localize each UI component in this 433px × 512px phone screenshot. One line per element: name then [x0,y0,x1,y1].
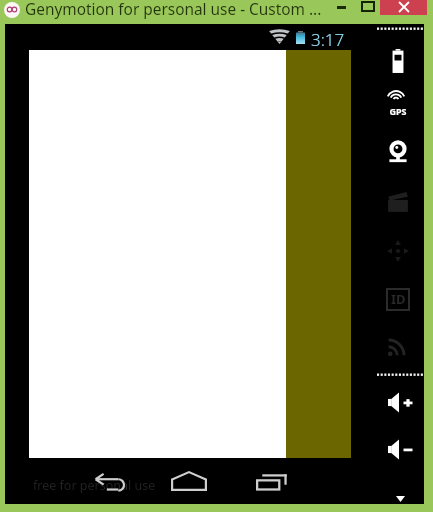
button[interactable]: Battery [383,46,413,76]
button[interactable]: Back [89,468,131,494]
button[interactable]: Maximize [356,0,380,15]
button[interactable]: Volume up [385,387,415,417]
button[interactable]: Close [380,0,427,15]
button[interactable]: Video [383,187,413,217]
button[interactable]: Home [168,468,210,494]
button[interactable]: Minimize [330,0,355,15]
staticText: Genymotion for personal use - Custom ... [25,0,322,20]
staticText: GPS [383,105,413,117]
button[interactable]: Move [383,236,413,266]
button[interactable]: Recents [250,468,292,494]
button[interactable]: Volume down [385,434,415,464]
button[interactable]: More [392,489,408,504]
staticText: free for personal use [33,477,156,494]
button[interactable]: Identifiers [383,284,413,314]
button[interactable]: Camera [383,137,413,167]
button[interactable]: GPS [383,92,413,122]
button[interactable]: Network [383,331,413,361]
staticText: ID [391,290,406,308]
staticText: 3:17 [311,28,345,51]
